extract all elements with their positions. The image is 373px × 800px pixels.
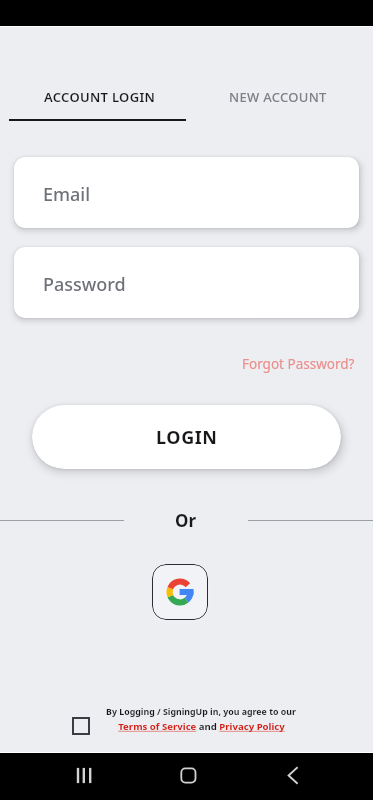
staticText: Terms of Service and Privacy Policy [118, 720, 285, 733]
staticText: ACCOUNT LOGIN [44, 88, 156, 106]
button[interactable]: By Logging / SigningUp in, you agree to … [100, 706, 302, 733]
button[interactable]: LOGIN [32, 405, 341, 469]
button[interactable]: Back [270, 753, 315, 800]
staticText: LOGIN [156, 425, 218, 450]
button[interactable]: NEW ACCOUNT [189, 88, 366, 119]
staticText: Password [43, 272, 126, 297]
button[interactable]: Home [166, 753, 211, 800]
button[interactable]: ACCOUNT LOGIN [11, 88, 188, 119]
staticText: By Logging / SigningUp in, you agree to … [106, 706, 296, 718]
staticText: Email [43, 182, 91, 207]
staticText: NEW ACCOUNT [229, 88, 327, 106]
staticText: Or [175, 509, 197, 532]
button[interactable]: Password [14, 247, 359, 318]
button[interactable]: Recent apps [62, 753, 107, 800]
button[interactable]: Forgot Password? [242, 355, 373, 373]
button[interactable]: Sign in with Google [152, 564, 208, 620]
button[interactable]: Agree to terms checkbox [72, 717, 90, 735]
button[interactable]: Email [14, 157, 359, 228]
